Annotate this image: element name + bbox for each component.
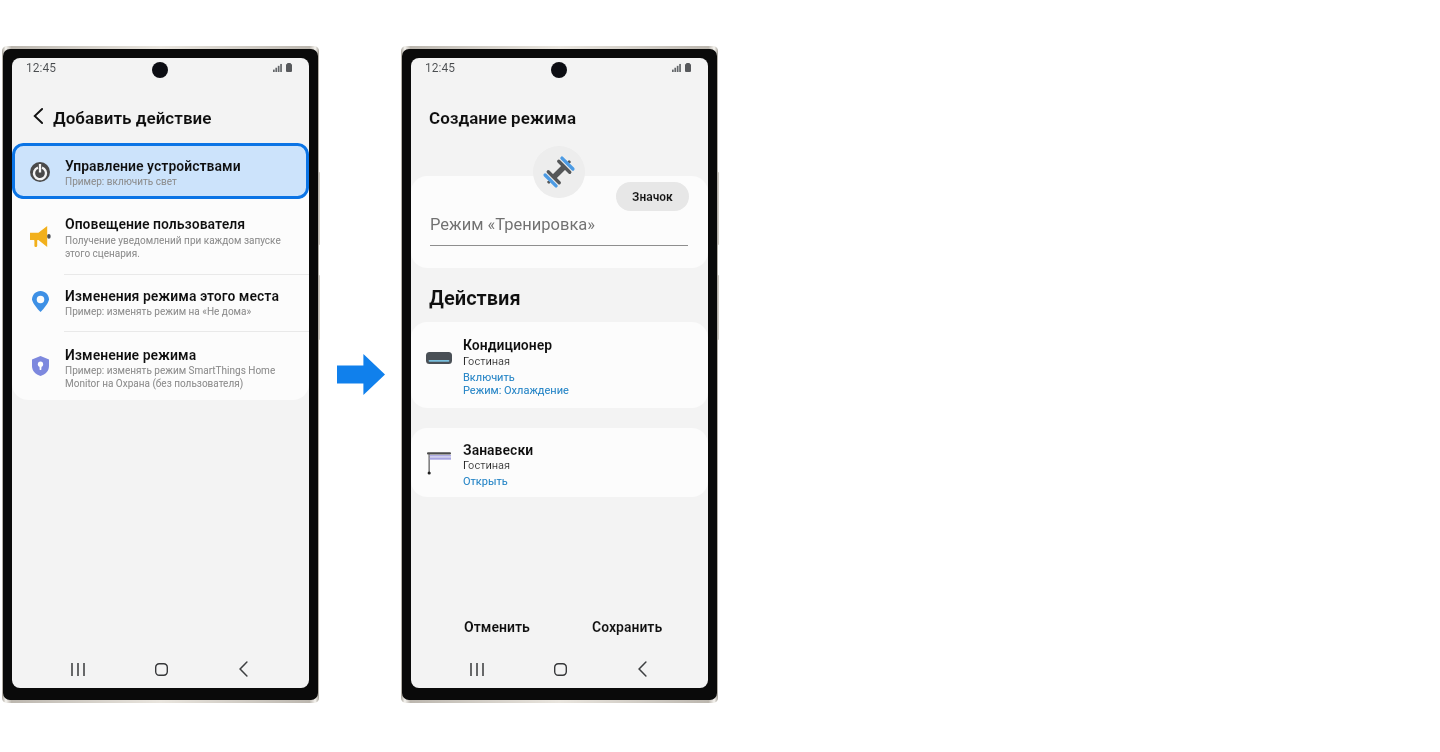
button[interactable] <box>12 278 309 330</box>
button[interactable]: Recents <box>62 657 94 681</box>
staticText: Изменения режима этого места <box>65 288 279 304</box>
staticText: Занавески <box>463 442 534 458</box>
staticText: Гостиная <box>463 355 511 368</box>
staticText: Пример: изменять режим на «Не дома» <box>65 306 252 318</box>
staticText: Действия <box>429 286 521 309</box>
staticText: Кондиционер <box>463 337 553 353</box>
staticText: Получение уведомлений при каждом запуске… <box>65 235 281 259</box>
other: Next step <box>337 354 385 395</box>
button[interactable]: Управление устройствами <box>12 143 309 199</box>
button[interactable] <box>12 336 309 398</box>
button[interactable]: Сохранить <box>585 613 670 641</box>
staticText: Гостиная <box>463 459 511 472</box>
staticText: Добавить действие <box>53 108 212 128</box>
staticText: Сохранить <box>592 619 663 635</box>
button[interactable]: Recents <box>461 657 493 681</box>
staticText: 12:45 <box>425 61 455 75</box>
staticText: Управление устройствами <box>65 158 241 174</box>
staticText: Изменение режима <box>65 347 197 363</box>
button[interactable] <box>411 428 708 497</box>
button[interactable]: Значок <box>616 182 689 211</box>
staticText: Значок <box>632 190 673 204</box>
staticText: Пример: изменять режим SmartThings Home … <box>65 365 276 389</box>
staticText: Включить <box>463 371 515 384</box>
button[interactable]: Mode icon <box>533 146 585 198</box>
button[interactable]: Back <box>26 104 50 128</box>
button[interactable]: Back <box>227 657 259 681</box>
staticText: Оповещение пользователя <box>65 216 246 232</box>
button[interactable]: Home <box>544 657 576 681</box>
staticText: Отменить <box>464 619 530 635</box>
button[interactable] <box>12 204 309 272</box>
button[interactable]: Back <box>626 657 658 681</box>
button[interactable]: Home <box>145 657 177 681</box>
staticText: Создание режима <box>429 108 577 128</box>
staticText: 12:45 <box>26 61 56 75</box>
button[interactable] <box>411 322 708 408</box>
staticText: Режим «Тренировка» <box>430 215 596 234</box>
staticText: Открыть <box>463 475 508 488</box>
button[interactable]: Отменить <box>457 613 537 641</box>
staticText: Режим: Охлаждение <box>463 384 569 397</box>
staticText: Пример: включить свет <box>65 176 177 188</box>
